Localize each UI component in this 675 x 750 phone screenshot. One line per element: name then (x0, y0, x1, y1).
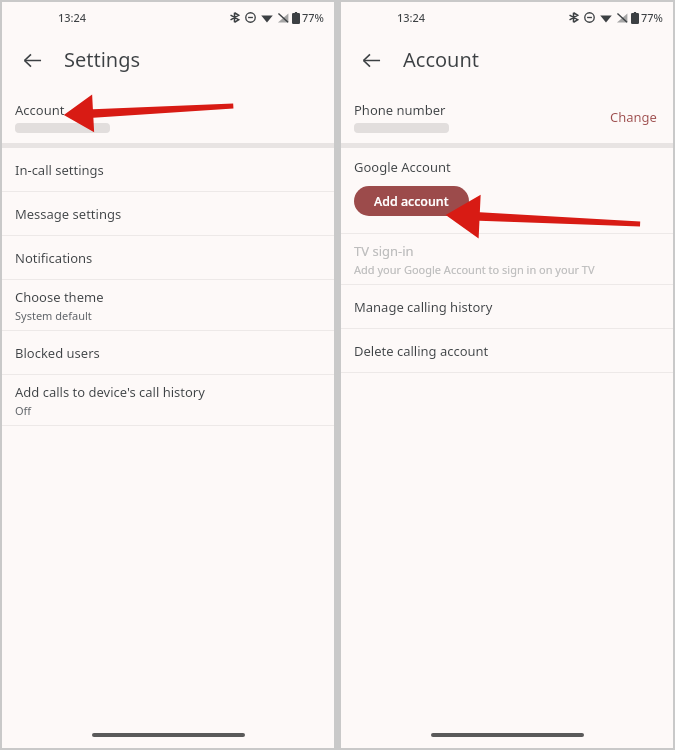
staticText: Notifications (15, 249, 93, 267)
button[interactable]: In-call settings (2, 148, 334, 191)
staticText: Choose theme (15, 288, 104, 306)
button[interactable]: Change (604, 104, 663, 130)
staticText: Account (403, 46, 480, 73)
staticText: Change (610, 108, 657, 126)
staticText: 13:24 (397, 10, 426, 25)
staticText: Add your Google Account to sign in on yo… (354, 262, 595, 277)
staticText: Off (15, 403, 32, 418)
staticText: Add account (374, 193, 449, 210)
button[interactable]: Blocked users (2, 331, 334, 374)
staticText: Settings (64, 46, 141, 73)
staticText: 13:24 (58, 10, 87, 25)
button[interactable]: Account (2, 91, 334, 143)
staticText: Add calls to device's call history (15, 383, 205, 401)
staticText: Account (15, 101, 65, 119)
staticText: Phone number (354, 101, 446, 119)
staticText: TV sign-in (354, 242, 414, 260)
staticText: Manage calling history (354, 298, 493, 316)
staticText: 77% (641, 10, 663, 25)
button[interactable]: Add account (354, 186, 469, 216)
staticText: Google Account (354, 158, 451, 176)
staticText: Delete calling account (354, 342, 489, 360)
button[interactable]: Add calls to device's call history (2, 375, 334, 425)
staticText: In-call settings (15, 161, 104, 179)
button[interactable]: Message settings (2, 192, 334, 235)
staticText: Blocked users (15, 344, 100, 362)
button[interactable]: Back (12, 40, 52, 80)
staticText: 77% (302, 10, 324, 25)
staticText: Message settings (15, 205, 122, 223)
button[interactable]: Back (351, 40, 391, 80)
button[interactable]: Notifications (2, 236, 334, 279)
button[interactable]: Delete calling account (341, 329, 673, 372)
button[interactable]: Phone number (341, 91, 673, 143)
button[interactable]: Choose theme (2, 280, 334, 330)
button[interactable]: Manage calling history (341, 285, 673, 328)
staticText: System default (15, 308, 92, 323)
